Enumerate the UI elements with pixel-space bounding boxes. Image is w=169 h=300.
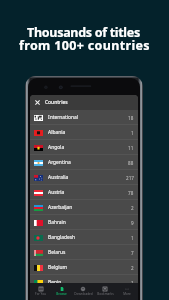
button[interactable]: Bahrain <box>30 215 138 230</box>
staticText: Countries <box>45 99 68 106</box>
staticText: Belgium <box>48 264 68 271</box>
staticText: Argentina <box>48 159 71 166</box>
staticText: For You <box>35 292 46 296</box>
staticText: Angola <box>48 144 65 151</box>
staticText: Austria <box>48 189 65 196</box>
button[interactable]: Austria <box>30 185 138 200</box>
button[interactable]: Benin <box>30 275 138 290</box>
staticText: International <box>48 114 79 121</box>
staticText: Bahrain <box>48 219 66 226</box>
button[interactable]: Argentina <box>30 155 138 170</box>
staticText: 7 <box>131 250 134 256</box>
staticText: Albania <box>48 129 66 136</box>
other: Close <box>35 100 40 105</box>
staticText: Bookmarks <box>97 292 114 296</box>
button[interactable]: Belarus <box>30 245 138 260</box>
staticText: 2 <box>131 205 134 211</box>
staticText: 78 <box>128 190 134 196</box>
button[interactable]: Bangladesh <box>30 230 138 245</box>
button[interactable]: Belgium <box>30 260 138 275</box>
staticText: 88 <box>128 160 134 166</box>
staticText: 1 <box>131 235 134 241</box>
button[interactable]: More <box>116 283 138 300</box>
button[interactable]: Albania <box>30 125 138 140</box>
staticText: 18 <box>128 115 134 121</box>
staticText: Browse <box>56 292 67 296</box>
staticText: 1 <box>131 130 134 136</box>
button[interactable]: Angola <box>30 140 138 155</box>
button[interactable]: Bookmarks <box>94 283 116 300</box>
staticText: Azerbaijan <box>48 204 73 211</box>
staticText: 1 <box>131 280 134 286</box>
button[interactable]: For You <box>30 283 51 300</box>
staticText: 217 <box>126 175 134 181</box>
staticText: Thousands of titles <box>27 24 140 41</box>
staticText: Belarus <box>48 249 66 256</box>
button[interactable]: Browse <box>51 283 72 300</box>
button[interactable]: Australia <box>30 170 138 185</box>
button[interactable]: Close <box>30 95 138 110</box>
staticText: Downloaded <box>74 292 93 296</box>
button[interactable]: International <box>30 110 138 125</box>
staticText: 2 <box>131 265 134 271</box>
staticText: Benin <box>48 279 62 286</box>
staticText: More <box>123 292 131 296</box>
staticText: Australia <box>48 174 69 181</box>
staticText: Bangladesh <box>48 234 76 241</box>
staticText: from 100+ countries <box>19 37 150 54</box>
staticText: 9 <box>131 220 134 226</box>
button[interactable]: Downloaded <box>72 283 94 300</box>
staticText: 11 <box>128 145 134 151</box>
button[interactable]: Azerbaijan <box>30 200 138 215</box>
